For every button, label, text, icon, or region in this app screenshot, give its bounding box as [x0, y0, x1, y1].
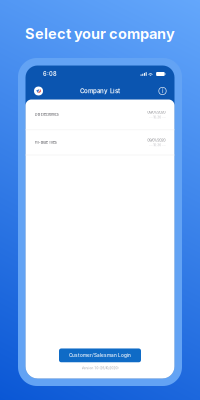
- staticText: 09/01/2020: [147, 138, 165, 142]
- button[interactable]: DB Electronics: [25, 99, 174, 129]
- staticText: - - 10:36 - -: [149, 116, 165, 119]
- staticText: 6:08: [43, 71, 57, 77]
- staticText: Select your company: [25, 25, 175, 43]
- staticText: Customer/Salesman Login: [69, 353, 131, 358]
- staticText: Company List: [80, 87, 120, 95]
- button[interactable]: Account: [33, 85, 44, 96]
- button[interactable]: Information: [158, 86, 167, 95]
- staticText: Version 1.0 (26/10/2020): [81, 366, 118, 370]
- button[interactable]: Hi-Blue Tiles: [25, 130, 174, 155]
- staticText: DB Electronics: [35, 112, 59, 117]
- staticText: i: [162, 87, 163, 95]
- button[interactable]: Customer/Salesman Login: [59, 348, 141, 362]
- staticText: - - 10:36 - -: [149, 143, 165, 147]
- staticText: Hi-Blue Tiles: [35, 140, 57, 145]
- staticText: 09/01/2020: [147, 110, 165, 114]
